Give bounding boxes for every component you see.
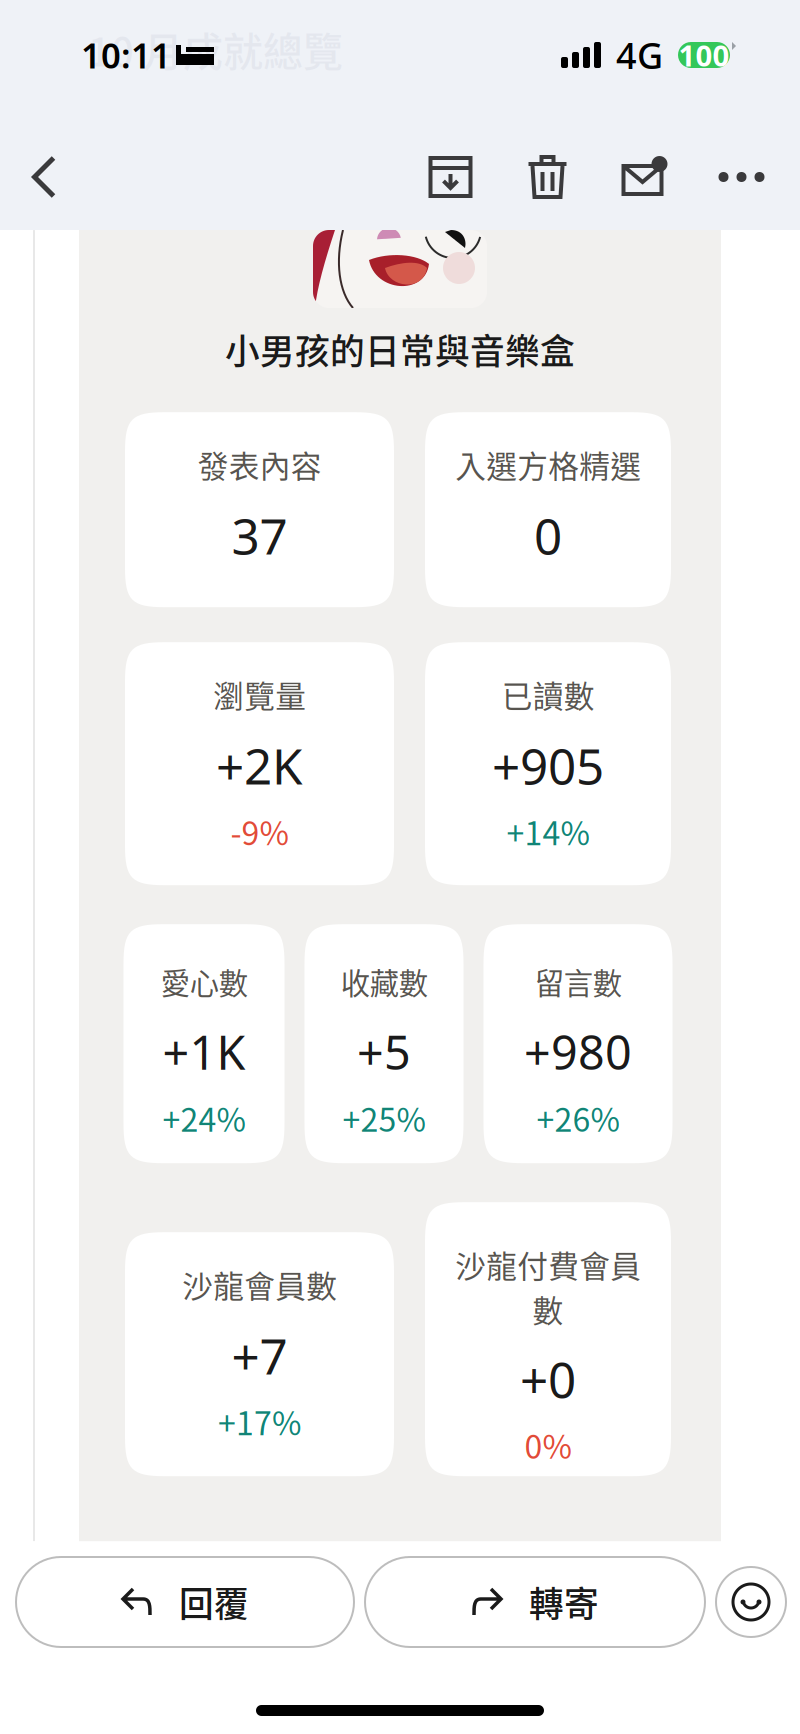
staticText: 10:11 xyxy=(81,32,171,78)
staticText: 小男孩的日常與音樂盒 xyxy=(225,324,575,374)
staticText: -9% xyxy=(230,808,288,854)
staticText: 沙龍會員數 xyxy=(182,1262,337,1307)
button[interactable]: React with emoji xyxy=(716,1567,786,1637)
staticText: 10 月成就總覽 xyxy=(88,20,343,78)
staticText: 4G xyxy=(616,31,663,79)
staticText: 回覆 xyxy=(179,1577,249,1627)
button[interactable]: 轉寄 xyxy=(365,1557,705,1647)
staticText: 留言數 xyxy=(534,960,621,1003)
staticText: +17% xyxy=(218,1398,301,1444)
staticText: +24% xyxy=(162,1095,245,1141)
staticText: 0% xyxy=(524,1421,571,1468)
staticText: +980 xyxy=(524,1021,632,1083)
staticText: +14% xyxy=(506,808,589,854)
button[interactable]: Archive xyxy=(402,117,499,237)
button[interactable]: 回覆 xyxy=(16,1557,354,1647)
staticText: 已讀數 xyxy=(501,672,594,717)
staticText: 發表內容 xyxy=(197,442,321,487)
staticText: 瀏覽量 xyxy=(213,672,306,717)
staticText: +25% xyxy=(342,1095,425,1141)
staticText: 轉寄 xyxy=(529,1577,599,1627)
staticText: +905 xyxy=(492,733,604,798)
button[interactable]: Mark as unread xyxy=(596,117,693,237)
staticText: +26% xyxy=(536,1095,619,1141)
staticText: 37 xyxy=(231,503,287,568)
staticText: +2K xyxy=(216,733,303,798)
button[interactable]: More options xyxy=(693,117,790,237)
button[interactable]: Delete xyxy=(499,117,596,237)
staticText: 沙龍付費會員 xyxy=(455,1242,641,1287)
staticText: 收藏數 xyxy=(340,960,427,1003)
staticText: 入選方格精選 xyxy=(455,442,641,487)
staticText: +7 xyxy=(231,1323,287,1388)
staticText: 數 xyxy=(532,1287,563,1331)
button[interactable]: Back xyxy=(0,117,88,237)
staticText: +1K xyxy=(162,1021,245,1083)
staticText: 0 xyxy=(534,503,562,568)
staticText: +0 xyxy=(520,1346,576,1411)
staticText: 愛心數 xyxy=(160,960,247,1003)
staticText: 100 xyxy=(678,35,729,74)
staticText: +5 xyxy=(357,1021,411,1083)
